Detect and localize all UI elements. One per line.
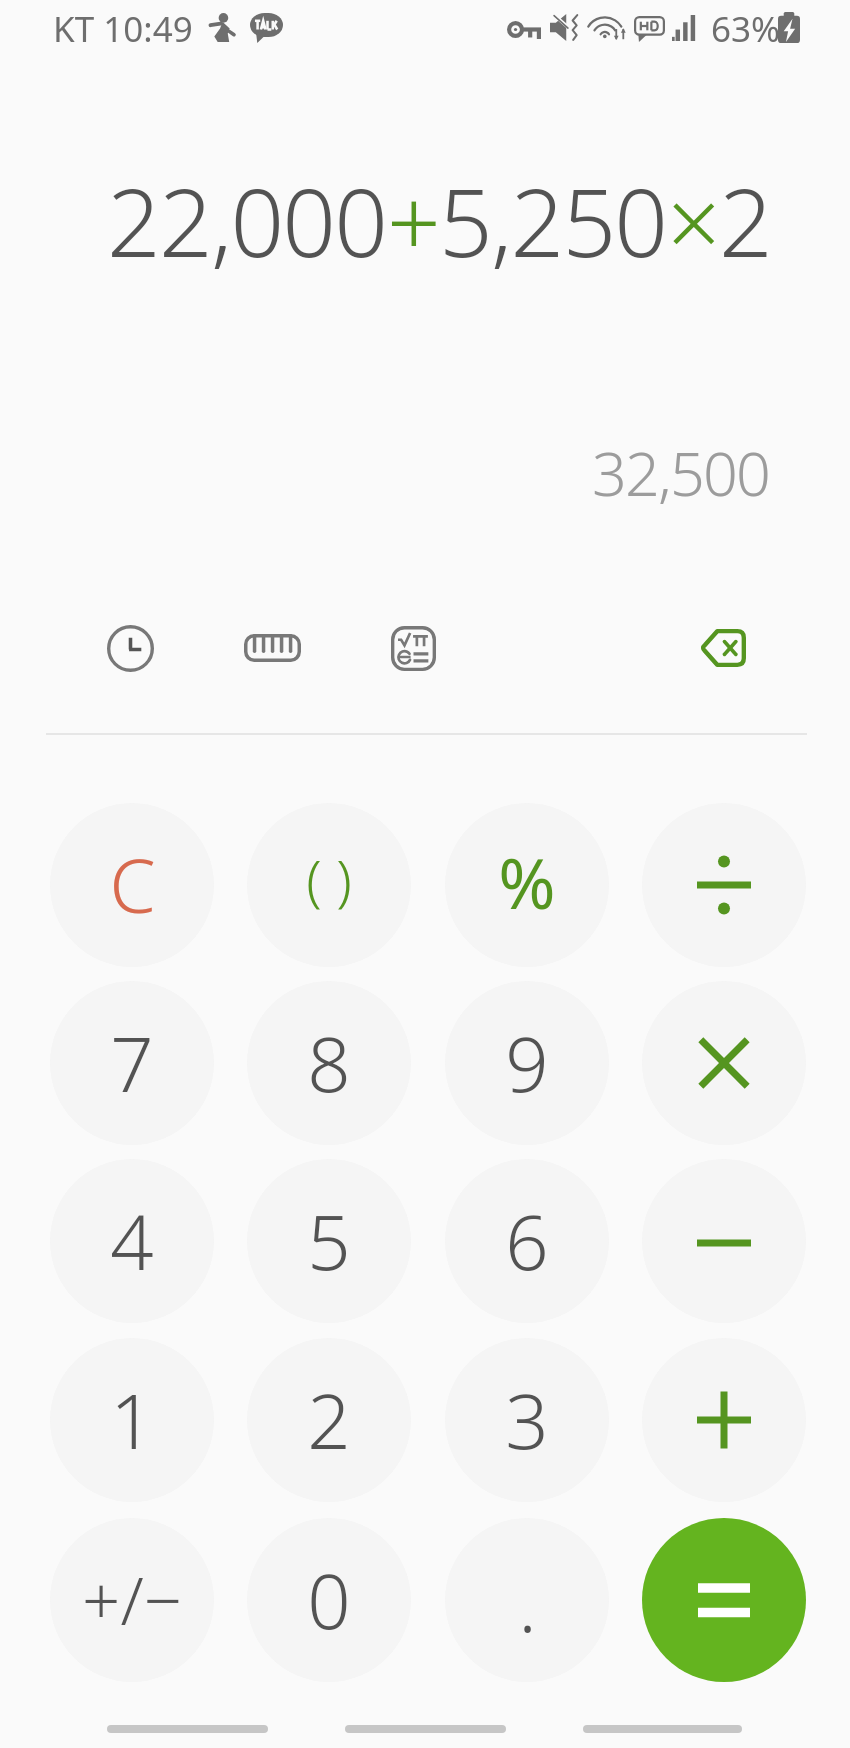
button[interactable]: Clear [50, 803, 214, 967]
staticText: 32,500 [592, 431, 770, 514]
staticText: × [667, 157, 719, 285]
button[interactable]: 5 [247, 1159, 411, 1323]
button[interactable]: 0 [247, 1518, 411, 1682]
button[interactable]: 1 [50, 1338, 214, 1502]
staticText: 5 [307, 1189, 351, 1293]
button[interactable]: Percent [445, 803, 609, 967]
button[interactable]: Backspace [680, 606, 764, 690]
button[interactable]: 3 [445, 1338, 609, 1502]
staticText: % [498, 835, 556, 929]
staticText: 3 [505, 1368, 549, 1472]
staticText: + [387, 157, 439, 285]
button[interactable]: Sign [50, 1518, 214, 1682]
button[interactable]: Decimal point [445, 1518, 609, 1682]
button[interactable]: 9 [445, 981, 609, 1145]
button[interactable]: Calculation history [88, 606, 172, 690]
staticText: 9 [505, 1011, 549, 1115]
button[interactable]: 6 [445, 1159, 609, 1323]
staticText: 0 [307, 1548, 351, 1652]
button[interactable]: Parentheses [247, 803, 411, 967]
button[interactable]: 2 [247, 1338, 411, 1502]
staticText: 6 [505, 1189, 549, 1293]
button[interactable]: Plus [642, 1338, 806, 1502]
staticText: 63% [711, 5, 781, 53]
staticText: 1 [110, 1368, 154, 1472]
button[interactable]: Divide [642, 803, 806, 967]
staticText: 7 [110, 1011, 154, 1115]
staticText: ( ) [306, 841, 352, 917]
staticText: +/− [82, 1553, 182, 1644]
button[interactable]: Multiply [642, 981, 806, 1145]
button[interactable]: 7 [50, 981, 214, 1145]
button[interactable]: Scientific calculator [371, 606, 455, 690]
staticText: 22,000 [107, 157, 387, 285]
button[interactable]: Unit converter [230, 606, 314, 690]
button[interactable]: 4 [50, 1159, 214, 1323]
staticText: 4 [110, 1189, 154, 1293]
staticText: 2 [307, 1368, 351, 1472]
staticText: . [518, 1551, 537, 1655]
staticText: 5,250 [439, 157, 667, 285]
staticText: KT 10:49 [53, 5, 193, 53]
staticText: 2 [719, 157, 771, 285]
button[interactable]: Equals [642, 1518, 806, 1682]
button[interactable]: 8 [247, 981, 411, 1145]
button[interactable]: Minus [642, 1159, 806, 1323]
staticText: 8 [307, 1011, 351, 1115]
staticText: C [109, 834, 156, 935]
